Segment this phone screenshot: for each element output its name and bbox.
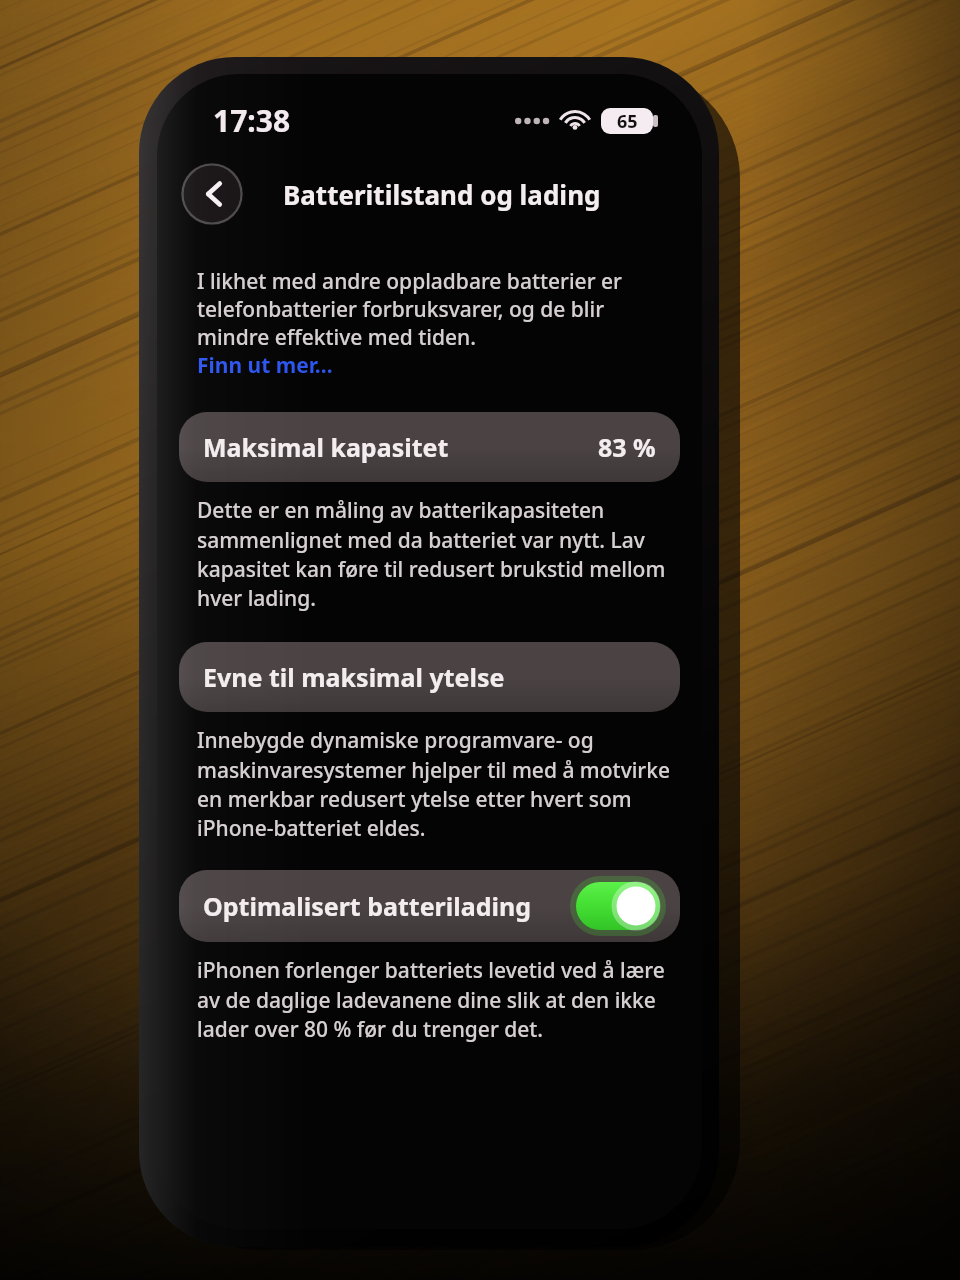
button[interactable]: Maksimal kapasitet <box>179 412 680 482</box>
button[interactable]: Evne til maksimal ytelse <box>179 642 680 712</box>
staticText: Maksimal kapasitet <box>203 430 449 464</box>
staticText: Dette er en måling av batterikapasiteten… <box>197 496 676 612</box>
button[interactable]: Tilbake <box>181 163 243 225</box>
staticText: Optimalisert batterilading <box>203 889 531 923</box>
staticText: Batteritilstand og lading <box>283 177 601 212</box>
staticText: 83 % <box>598 430 656 464</box>
staticText: Evne til maksimal ytelse <box>203 660 505 694</box>
staticText: I likhet med andre oppladbare batterier … <box>197 267 674 351</box>
staticText: iPhonen forlenger batteriets levetid ved… <box>197 956 676 1043</box>
staticText: Innebygde dynamiske programvare- og mask… <box>197 726 676 842</box>
staticText: 65 <box>617 109 638 134</box>
button[interactable]: Finn ut mer… <box>197 351 333 380</box>
staticText: Finn ut mer… <box>197 351 333 380</box>
button[interactable]: Optimalisert batterilading på <box>576 882 660 930</box>
button[interactable]: Optimalisert batterilading <box>179 870 680 942</box>
staticText: 17:38 <box>213 100 291 141</box>
